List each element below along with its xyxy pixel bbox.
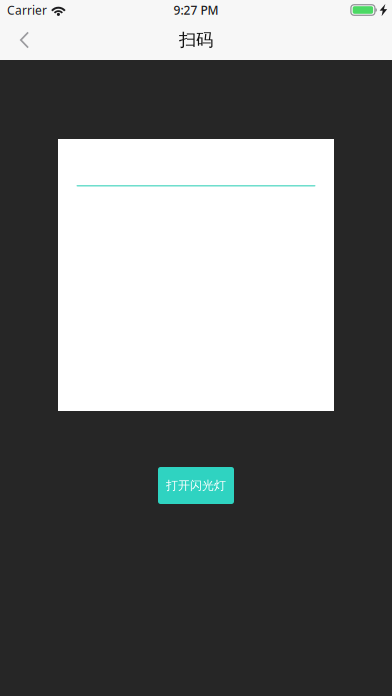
staticText: 扫码 [179, 29, 213, 51]
staticText: Carrier [7, 2, 47, 18]
staticText: 9:27 PM [173, 2, 218, 18]
button[interactable]: 打开闪光灯 [158, 467, 234, 504]
button[interactable]: Back [0, 20, 48, 60]
staticText: 打开闪光灯 [166, 478, 226, 493]
